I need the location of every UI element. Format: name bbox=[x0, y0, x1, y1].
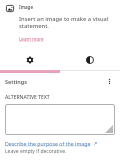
button[interactable]: Styles tab bbox=[60, 48, 120, 71]
staticText: Describe the purpose of the image bbox=[5, 140, 91, 147]
button[interactable]: Describe the purpose of the image bbox=[5, 140, 97, 147]
staticText: Leave empty if decorative. bbox=[5, 148, 67, 155]
staticText: Insert an image to make a visual stateme… bbox=[19, 15, 109, 30]
button[interactable] bbox=[5, 104, 115, 135]
staticText: Learn more bbox=[19, 36, 44, 42]
button[interactable]: More options bbox=[103, 75, 116, 88]
button[interactable]: Learn more bbox=[19, 36, 44, 42]
button[interactable]: Settings tab bbox=[0, 48, 60, 71]
staticText: Settings bbox=[5, 78, 27, 85]
staticText: ALTERNATIVE TEXT bbox=[5, 94, 50, 101]
staticText: Image bbox=[19, 4, 34, 10]
